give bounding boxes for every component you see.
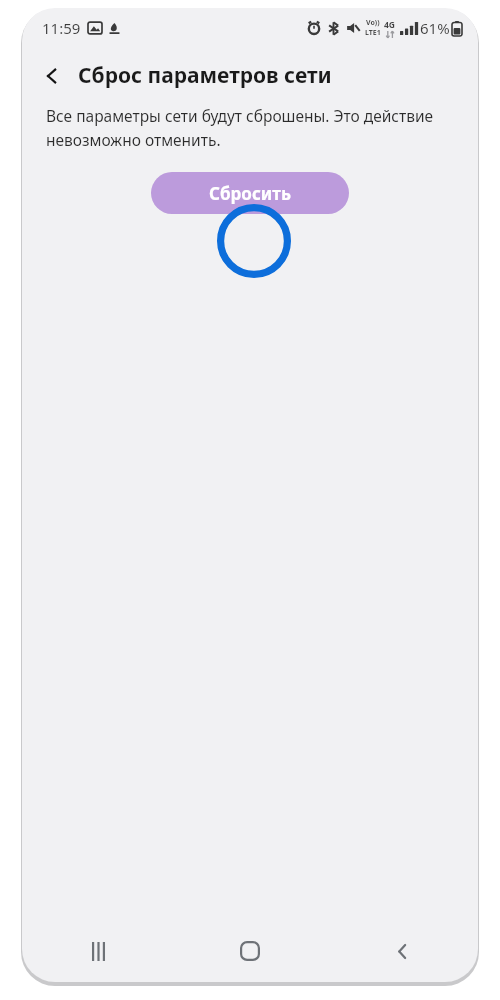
- staticText: 61%: [420, 18, 450, 38]
- button[interactable]: Сбросить: [151, 172, 349, 214]
- button[interactable]: Back: [326, 920, 478, 982]
- staticText: 11:59: [42, 18, 81, 38]
- staticText: 4G: [384, 19, 396, 31]
- staticText: Все параметры сети будут сброшены. Это д…: [46, 105, 438, 150]
- staticText: Сбросить: [209, 182, 291, 205]
- button[interactable]: Back: [32, 56, 72, 96]
- staticText: Сброс параметров сети: [78, 61, 332, 90]
- button[interactable]: Recents: [22, 920, 174, 982]
- staticText: Vo)): [366, 18, 380, 28]
- staticText: LTE1: [365, 28, 381, 38]
- button[interactable]: Home: [174, 920, 326, 982]
